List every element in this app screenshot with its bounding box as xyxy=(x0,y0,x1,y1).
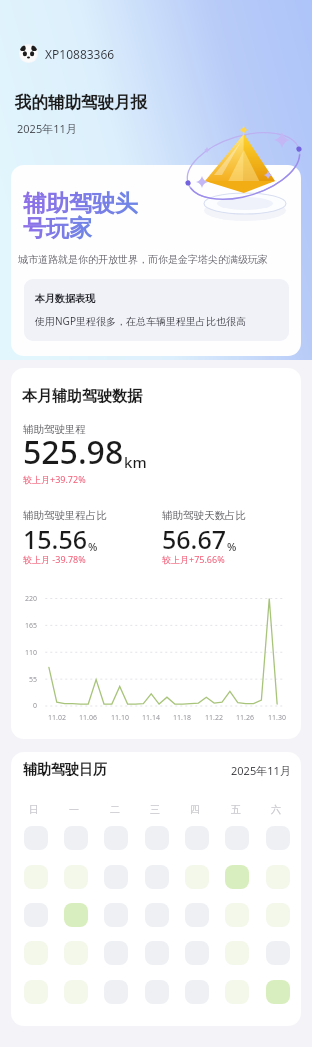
button[interactable] xyxy=(24,980,48,1004)
staticText: 11.22 xyxy=(205,713,223,723)
button[interactable] xyxy=(24,865,48,889)
staticText: 0 xyxy=(33,701,38,711)
button[interactable] xyxy=(266,826,290,850)
staticText: % xyxy=(227,539,237,554)
staticText: 56.67 xyxy=(162,522,227,556)
button[interactable] xyxy=(104,826,128,850)
staticText: 五 xyxy=(231,803,241,816)
staticText: 11.10 xyxy=(111,713,129,723)
staticText: 2025年11月 xyxy=(231,763,291,778)
button[interactable] xyxy=(64,903,88,927)
button[interactable] xyxy=(185,941,209,965)
button[interactable] xyxy=(104,941,128,965)
button[interactable] xyxy=(24,826,48,850)
button[interactable] xyxy=(104,903,128,927)
button[interactable] xyxy=(145,865,169,889)
button[interactable] xyxy=(225,941,249,965)
staticText: 城市道路就是你的开放世界，而你是金字塔尖的满级玩家 xyxy=(18,253,268,266)
staticText: 我的辅助驾驶月报 xyxy=(15,92,147,113)
staticText: 使用NGP里程很多，在总车辆里程里占比也很高 xyxy=(35,314,246,328)
button[interactable] xyxy=(185,826,209,850)
staticText: XP10883366 xyxy=(45,46,115,62)
button[interactable] xyxy=(266,903,290,927)
staticText: 日 xyxy=(29,803,39,816)
staticText: 11.30 xyxy=(268,713,286,723)
staticText: 11.14 xyxy=(142,713,160,723)
button[interactable] xyxy=(64,826,88,850)
staticText: 55 xyxy=(29,675,38,685)
staticText: 11.06 xyxy=(79,713,97,723)
staticText: 11.18 xyxy=(173,713,191,723)
staticText: 辅助驾驶里程 xyxy=(23,423,86,436)
button[interactable] xyxy=(24,941,48,965)
staticText: 一 xyxy=(69,803,79,816)
button[interactable] xyxy=(266,865,290,889)
button[interactable] xyxy=(145,826,169,850)
staticText: km xyxy=(124,452,147,472)
staticText: 220 xyxy=(25,594,38,604)
staticText: 较上月 -39.78% xyxy=(23,553,86,565)
staticText: 本月数据表现 xyxy=(35,292,95,305)
button[interactable] xyxy=(225,980,249,1004)
button[interactable] xyxy=(185,980,209,1004)
staticText: 三 xyxy=(150,803,160,816)
button[interactable] xyxy=(225,903,249,927)
button[interactable] xyxy=(225,865,249,889)
staticText: 525.98 xyxy=(23,430,124,474)
button[interactable] xyxy=(64,980,88,1004)
button[interactable] xyxy=(185,865,209,889)
staticText: % xyxy=(88,539,98,554)
button[interactable] xyxy=(64,941,88,965)
staticText: 较上月+75.66% xyxy=(162,553,225,565)
button[interactable] xyxy=(185,903,209,927)
staticText: 六 xyxy=(271,803,281,816)
button[interactable] xyxy=(145,941,169,965)
staticText: 15.56 xyxy=(23,522,88,556)
staticText: 110 xyxy=(25,648,38,658)
staticText: 辅助驾驶里程占比 xyxy=(23,509,107,522)
staticText: 本月辅助驾驶数据 xyxy=(22,387,142,406)
button[interactable]: XP10883366 xyxy=(19,44,115,63)
button[interactable] xyxy=(145,980,169,1004)
button[interactable] xyxy=(225,826,249,850)
staticText: 165 xyxy=(25,621,38,631)
staticText: 11.02 xyxy=(48,713,66,723)
staticText: 号玩家 xyxy=(23,214,92,243)
staticText: 辅助驾驶头 xyxy=(23,189,138,218)
button[interactable] xyxy=(266,980,290,1004)
staticText: 2025年11月 xyxy=(17,121,77,136)
staticText: 11.26 xyxy=(236,713,254,723)
button[interactable] xyxy=(104,865,128,889)
staticText: 辅助驾驶日历 xyxy=(23,761,107,779)
button[interactable] xyxy=(24,903,48,927)
button[interactable] xyxy=(145,903,169,927)
button[interactable] xyxy=(104,980,128,1004)
staticText: 辅助驾驶天数占比 xyxy=(162,509,246,522)
staticText: 二 xyxy=(110,803,120,816)
staticText: 较上月+39.72% xyxy=(23,473,86,485)
staticText: 四 xyxy=(190,803,200,816)
button[interactable] xyxy=(266,941,290,965)
button[interactable] xyxy=(64,865,88,889)
